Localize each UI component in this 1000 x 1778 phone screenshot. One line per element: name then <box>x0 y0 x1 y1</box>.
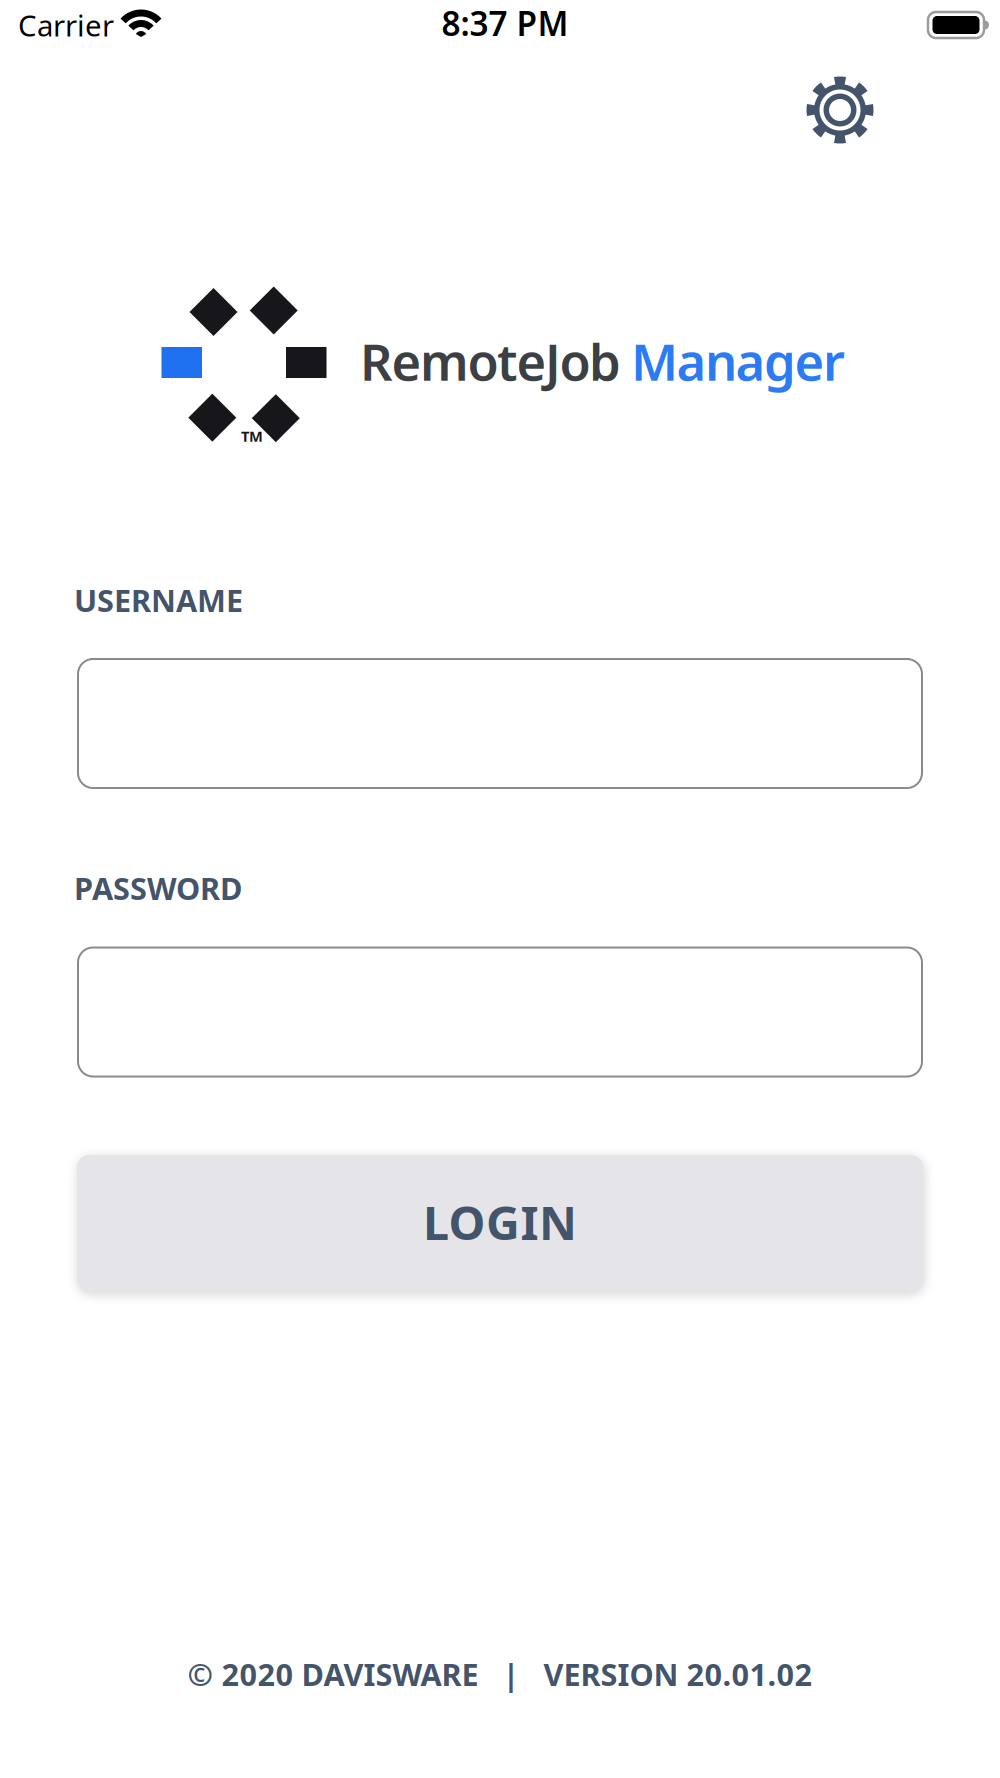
staticText: LOGIN <box>423 1191 577 1253</box>
button[interactable] <box>78 947 922 1076</box>
button[interactable]: LOGIN <box>77 1155 923 1291</box>
staticText: USERNAME <box>74 580 243 620</box>
staticText: TM <box>241 426 263 446</box>
button[interactable] <box>78 659 922 788</box>
staticText: PASSWORD <box>74 868 242 908</box>
staticText: RemoteJob <box>360 327 621 395</box>
staticText: Manager <box>631 327 845 395</box>
staticText: Carrier <box>18 5 114 44</box>
staticText: © 2020 DAVISWARE | VERSION 20.01.02 <box>187 1654 812 1694</box>
button[interactable] <box>806 76 874 144</box>
staticText: 8:37 PM <box>441 1 568 45</box>
